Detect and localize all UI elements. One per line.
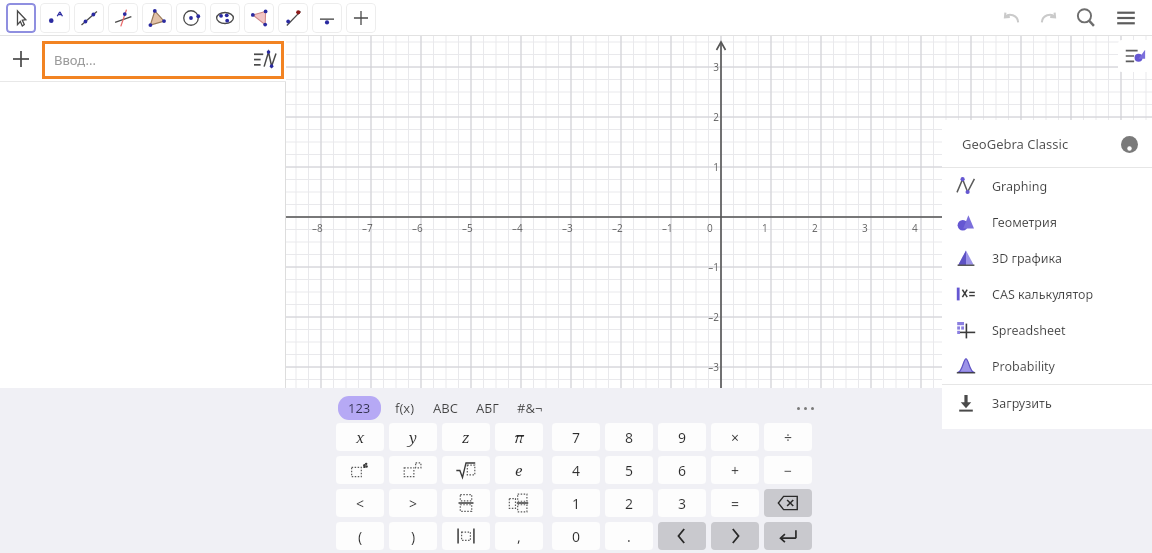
staticText: =	[731, 494, 740, 513]
staticText: –2	[699, 310, 719, 324]
button[interactable]: Tool 0	[6, 3, 36, 33]
button[interactable]: 5	[605, 456, 653, 484]
button[interactable]: 9	[658, 423, 706, 451]
button[interactable]: More	[792, 398, 818, 418]
staticText: x	[356, 427, 365, 447]
button[interactable]: Power	[389, 456, 437, 484]
button[interactable]: 123	[348, 399, 371, 417]
button[interactable]: f(x)	[393, 396, 417, 420]
staticText: 2	[812, 221, 832, 235]
staticText: 1	[699, 160, 719, 174]
staticText: >	[409, 494, 418, 513]
button[interactable]: #&¬	[515, 396, 545, 420]
button[interactable]: Add input	[0, 36, 42, 82]
button[interactable]: Загрузить	[942, 385, 1152, 421]
button[interactable]: Tool 5	[176, 3, 206, 33]
button[interactable]: 4	[552, 456, 600, 484]
staticText: 6	[678, 461, 687, 480]
button[interactable]: Graphing	[942, 168, 1152, 204]
staticText: GeoGebra Classic	[962, 135, 1069, 153]
button[interactable]: CAS калькулятор	[942, 276, 1152, 312]
staticText: 1	[762, 221, 782, 235]
staticText: –1	[662, 221, 682, 235]
button[interactable]: Mixed number	[495, 489, 543, 517]
staticText: –4	[512, 221, 532, 235]
button[interactable]: Right	[711, 522, 759, 550]
button[interactable]: Square root	[442, 456, 490, 484]
staticText: 5	[962, 221, 982, 235]
button[interactable]: e	[495, 456, 543, 484]
button[interactable]: Absolute value	[442, 522, 490, 550]
staticText: 4	[912, 221, 932, 235]
staticText: #&¬	[517, 399, 543, 417]
button[interactable]: Tool 10	[346, 3, 376, 33]
staticText: 1	[572, 494, 581, 513]
button[interactable]: x	[336, 423, 384, 451]
button[interactable]: z	[442, 423, 490, 451]
staticText: 3	[862, 221, 882, 235]
button[interactable]: y	[389, 423, 437, 451]
button[interactable]: Redo	[1034, 4, 1062, 32]
button[interactable]: 7	[552, 423, 600, 451]
staticText: –5	[462, 221, 482, 235]
button[interactable]: Tool 3	[108, 3, 138, 33]
button[interactable]: Search	[1072, 4, 1100, 32]
button[interactable]: Tool 6	[210, 3, 240, 33]
button[interactable]: Tool 2	[74, 3, 104, 33]
button[interactable]: 6	[658, 456, 706, 484]
button[interactable]: Tool 7	[244, 3, 274, 33]
button[interactable]: Left	[658, 522, 706, 550]
staticText: –6	[412, 221, 432, 235]
button[interactable]: Undo	[998, 4, 1026, 32]
button[interactable]: 3	[658, 489, 706, 517]
button[interactable]: ABC	[431, 396, 460, 420]
button[interactable]: )	[389, 522, 437, 550]
staticText: Spreadsheet	[992, 322, 1066, 339]
button[interactable]: Tool 4	[142, 3, 172, 33]
button[interactable]: (	[336, 522, 384, 550]
button[interactable]: Input help	[251, 46, 279, 74]
button[interactable]: Fraction	[442, 489, 490, 517]
button[interactable]: Help	[1118, 133, 1140, 155]
staticText: ÷	[784, 428, 793, 447]
button[interactable]: ÷	[764, 423, 812, 451]
button[interactable]: 8	[605, 423, 653, 451]
staticText: .	[627, 527, 631, 546]
staticText: 6	[1012, 221, 1032, 235]
button[interactable]: −	[764, 456, 812, 484]
button[interactable]: 1	[552, 489, 600, 517]
staticText: z	[462, 427, 470, 447]
button[interactable]: 3D графика	[942, 240, 1152, 276]
staticText: y	[409, 427, 417, 447]
button[interactable]: Spreadsheet	[942, 312, 1152, 348]
button[interactable]: Square	[336, 456, 384, 484]
staticText: 123	[348, 399, 371, 417]
button[interactable]: Ввод...	[42, 41, 284, 79]
button[interactable]: Style bar	[1118, 40, 1152, 72]
button[interactable]: Геометрия	[942, 204, 1152, 240]
button[interactable]: .	[605, 522, 653, 550]
button[interactable]: Enter	[764, 522, 812, 550]
button[interactable]: 2	[605, 489, 653, 517]
staticText: )	[411, 527, 416, 546]
button[interactable]: +	[711, 456, 759, 484]
button[interactable]: Probability	[942, 348, 1152, 384]
button[interactable]: Tool 1	[40, 3, 70, 33]
button[interactable]: ×	[711, 423, 759, 451]
button[interactable]: АБГ	[474, 396, 501, 420]
button[interactable]: <	[336, 489, 384, 517]
button[interactable]: >	[389, 489, 437, 517]
staticText: ABC	[433, 399, 458, 417]
button[interactable]: Menu	[1112, 4, 1140, 32]
button[interactable]: =	[711, 489, 759, 517]
button[interactable]: 0	[552, 522, 600, 550]
button[interactable]: π	[495, 423, 543, 451]
staticText: –7	[362, 221, 382, 235]
staticText: <	[356, 494, 365, 513]
button[interactable]: Tool 9	[312, 3, 342, 33]
button[interactable]: Backspace	[764, 489, 812, 517]
button[interactable]: Tool 8	[278, 3, 308, 33]
staticText: 0	[572, 527, 581, 546]
button[interactable]: ,	[495, 522, 543, 550]
